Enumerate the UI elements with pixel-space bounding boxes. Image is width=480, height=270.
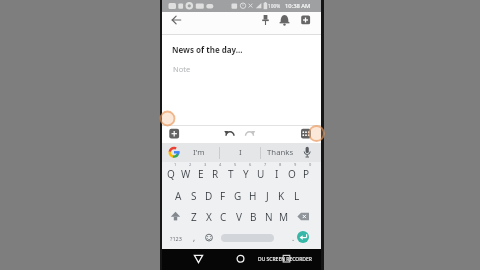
staticText: 10:38 AM — [285, 2, 311, 10]
button[interactable]: , — [189, 231, 199, 243]
button[interactable]: C — [216, 210, 231, 224]
staticText: J — [266, 189, 269, 203]
staticText: G — [234, 189, 242, 203]
button[interactable] — [297, 12, 314, 29]
button[interactable]: F — [215, 189, 230, 203]
staticText: ?123 — [170, 235, 182, 242]
staticText: 3 — [204, 162, 207, 167]
button[interactable] — [168, 12, 185, 29]
button[interactable] — [242, 127, 257, 141]
staticText: K — [278, 189, 285, 203]
staticText: Thanks — [267, 147, 294, 158]
button[interactable]: E — [193, 167, 208, 181]
button[interactable]: U — [253, 167, 268, 181]
button[interactable]: I — [269, 167, 284, 181]
button[interactable]: V — [231, 210, 246, 224]
staticText: T — [228, 167, 234, 181]
button[interactable]: I — [230, 145, 250, 159]
button[interactable] — [298, 127, 313, 141]
button[interactable]: B — [246, 210, 261, 224]
button[interactable]: Y — [238, 167, 253, 181]
staticText: A — [175, 189, 182, 203]
staticText: S — [191, 189, 197, 203]
staticText: I'm — [193, 147, 205, 158]
button[interactable]: M — [276, 210, 291, 224]
button[interactable] — [278, 251, 295, 267]
staticText: W — [181, 167, 191, 181]
button[interactable] — [168, 209, 183, 224]
button[interactable] — [166, 127, 181, 141]
staticText: 5 — [234, 162, 237, 167]
staticText: 0 — [309, 162, 312, 167]
button[interactable]: I'm — [184, 145, 214, 159]
staticText: 4 — [219, 162, 222, 167]
staticText: 8 — [279, 162, 282, 167]
staticText: Note — [173, 64, 191, 74]
button[interactable]: Z — [186, 210, 201, 224]
staticText: 100% — [268, 3, 281, 10]
button[interactable] — [299, 145, 314, 160]
button[interactable]: R — [208, 167, 223, 181]
staticText: Q — [167, 167, 175, 181]
button[interactable]: X — [201, 210, 216, 224]
staticText: B — [250, 210, 257, 224]
staticText: E — [198, 167, 204, 181]
button[interactable] — [232, 251, 249, 267]
staticText: News of the day... — [172, 44, 243, 55]
staticText: R — [212, 167, 219, 181]
button[interactable]: P — [299, 167, 314, 181]
staticText: I — [275, 167, 279, 181]
staticText: F — [220, 189, 226, 203]
button[interactable]: L — [289, 189, 304, 203]
button[interactable]: O — [284, 167, 299, 181]
button[interactable] — [221, 234, 274, 242]
button[interactable]: ?123 — [167, 232, 185, 244]
button[interactable]: Q — [163, 167, 178, 181]
button[interactable]: G — [230, 189, 245, 203]
button[interactable] — [167, 145, 181, 160]
button[interactable]: S — [186, 189, 201, 203]
staticText: 9 — [294, 162, 297, 167]
staticText: P — [303, 167, 310, 181]
button[interactable]: Thanks — [260, 145, 300, 159]
staticText: Y — [243, 167, 249, 181]
button[interactable] — [257, 12, 274, 29]
button[interactable]: H — [245, 189, 260, 203]
staticText: N — [265, 210, 273, 224]
staticText: I — [239, 147, 242, 158]
staticText: U — [257, 167, 265, 181]
button[interactable]: K — [274, 189, 289, 203]
staticText: 2 — [189, 162, 192, 167]
staticText: 7 — [264, 162, 267, 167]
button[interactable]: J — [260, 189, 275, 203]
button[interactable]: A — [171, 189, 186, 203]
button[interactable] — [297, 209, 312, 224]
staticText: O — [288, 167, 296, 181]
staticText: H — [249, 189, 257, 203]
button[interactable] — [190, 251, 207, 267]
staticText: 1 — [174, 162, 177, 167]
staticText: . — [292, 232, 295, 243]
button[interactable]: D — [201, 189, 216, 203]
button[interactable]: T — [223, 167, 238, 181]
button[interactable] — [276, 12, 293, 29]
button[interactable] — [297, 231, 309, 243]
staticText: , — [193, 232, 196, 243]
button[interactable]: N — [261, 210, 276, 224]
staticText: V — [236, 210, 242, 224]
staticText: D — [205, 189, 213, 203]
staticText: Z — [191, 210, 197, 224]
staticText: DU SCREEN RECORDER — [258, 256, 312, 263]
staticText: C — [220, 210, 227, 224]
button[interactable]: W — [178, 167, 193, 181]
staticText: 6 — [249, 162, 252, 167]
staticText: L — [294, 189, 300, 203]
staticText: X — [206, 210, 212, 224]
button[interactable]: . — [288, 231, 298, 243]
staticText: M — [279, 210, 289, 224]
button[interactable] — [222, 127, 237, 141]
